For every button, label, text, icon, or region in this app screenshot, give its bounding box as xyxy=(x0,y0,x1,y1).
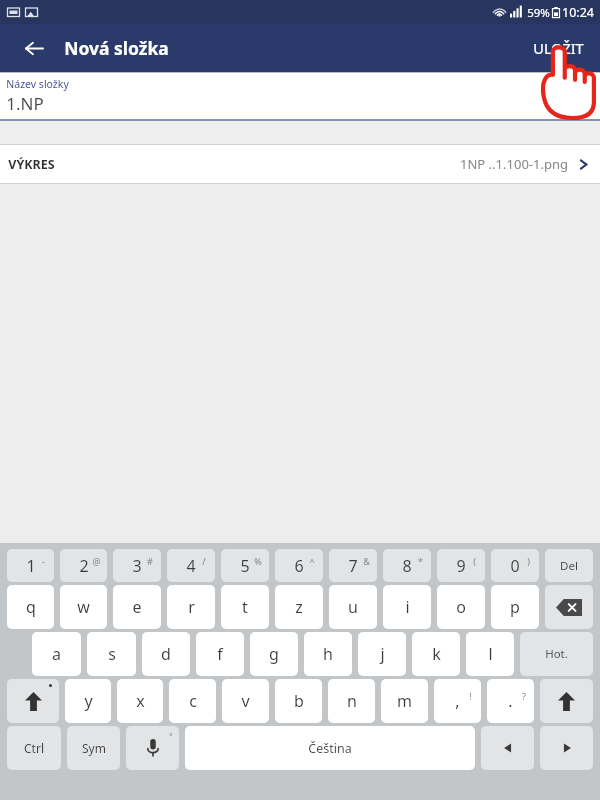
button[interactable]: k xyxy=(412,632,460,676)
staticText: o xyxy=(456,596,466,618)
staticText: 1NP ..1.100-1.png xyxy=(460,155,568,173)
staticText: p xyxy=(510,596,520,618)
button[interactable]: 0 xyxy=(491,549,539,582)
staticText: q xyxy=(26,596,36,618)
button[interactable]: 8 xyxy=(383,549,431,582)
button[interactable]: o xyxy=(437,585,485,629)
button[interactable]: v xyxy=(222,679,269,723)
button[interactable]: Ctrl xyxy=(7,726,61,770)
button[interactable]: e xyxy=(113,585,161,629)
button[interactable]: c xyxy=(169,679,216,723)
staticText: 6 xyxy=(294,555,304,577)
staticText: 5 xyxy=(240,555,250,577)
staticText: t xyxy=(242,596,248,618)
staticText: 10:24 xyxy=(562,4,594,21)
button[interactable]: Move right xyxy=(540,726,593,770)
staticText: k xyxy=(432,643,441,665)
staticText: f xyxy=(217,643,223,665)
button[interactable]: p xyxy=(491,585,539,629)
staticText: ? xyxy=(522,690,526,702)
staticText: x xyxy=(136,690,145,712)
button[interactable]: u xyxy=(329,585,377,629)
button[interactable]: n xyxy=(328,679,375,723)
button[interactable]: , xyxy=(434,679,481,723)
button[interactable]: Čeština xyxy=(185,726,475,770)
button[interactable]: Voice input xyxy=(126,726,179,770)
staticText: - xyxy=(42,555,45,567)
button[interactable]: b xyxy=(275,679,322,723)
staticText: 59% xyxy=(527,5,550,21)
staticText: g xyxy=(269,643,279,665)
button[interactable]: ULOŽIT xyxy=(517,24,600,72)
button[interactable]: f xyxy=(196,632,244,676)
button[interactable]: l xyxy=(466,632,514,676)
button[interactable]: Shift xyxy=(540,679,593,723)
staticText: @ xyxy=(92,555,101,567)
button[interactable]: VÝKRES xyxy=(0,145,600,183)
button[interactable]: 4 xyxy=(167,549,215,582)
staticText: y xyxy=(84,690,93,712)
button[interactable]: 7 xyxy=(329,549,377,582)
staticText: u xyxy=(348,596,358,618)
button[interactable]: x xyxy=(117,679,163,723)
button[interactable]: m xyxy=(381,679,428,723)
button[interactable]: Del xyxy=(545,549,593,582)
staticText: w xyxy=(77,596,90,618)
button[interactable]: h xyxy=(304,632,352,676)
staticText: , xyxy=(455,690,460,712)
button[interactable]: z xyxy=(275,585,323,629)
staticText: Ctrl xyxy=(24,740,44,756)
staticText: Hot. xyxy=(545,646,568,662)
staticText: c xyxy=(189,690,197,712)
staticText: Název složky xyxy=(6,77,69,91)
staticText: i xyxy=(405,596,410,618)
staticText: 8 xyxy=(402,555,412,577)
button[interactable]: 5 xyxy=(221,549,269,582)
staticText: 0 xyxy=(510,555,520,577)
staticText: ULOŽIT xyxy=(533,38,584,58)
staticText: VÝKRES xyxy=(8,156,55,173)
staticText: % xyxy=(254,555,262,567)
staticText: h xyxy=(323,643,333,665)
staticText: ° xyxy=(169,731,173,742)
button[interactable]: 9 xyxy=(437,549,485,582)
button[interactable]: Move left xyxy=(481,726,534,770)
staticText: / xyxy=(202,555,206,567)
button[interactable]: y xyxy=(65,679,111,723)
button[interactable]: i xyxy=(383,585,431,629)
staticText: 7 xyxy=(348,555,358,577)
button[interactable]: 6 xyxy=(275,549,323,582)
button[interactable]: Backspace xyxy=(545,585,593,629)
staticText: 1.NP xyxy=(6,92,44,115)
button[interactable]: r xyxy=(167,585,215,629)
button[interactable]: g xyxy=(250,632,298,676)
button[interactable]: 2 xyxy=(60,549,107,582)
staticText: 2 xyxy=(79,555,89,577)
button[interactable]: Back xyxy=(14,28,54,68)
button[interactable]: Shift xyxy=(7,679,59,723)
button[interactable]: j xyxy=(358,632,406,676)
staticText: m xyxy=(397,690,412,712)
staticText: . xyxy=(508,690,513,712)
staticText: ! xyxy=(469,690,472,702)
button[interactable]: t xyxy=(221,585,269,629)
button[interactable]: Sym xyxy=(67,726,120,770)
staticText: n xyxy=(347,690,357,712)
staticText: b xyxy=(294,690,304,712)
button[interactable]: w xyxy=(60,585,107,629)
button[interactable]: . xyxy=(487,679,534,723)
button[interactable]: s xyxy=(87,632,136,676)
staticText: 9 xyxy=(456,555,466,577)
staticText: j xyxy=(380,643,385,665)
button[interactable]: d xyxy=(142,632,190,676)
staticText: 4 xyxy=(186,555,196,577)
staticText: l xyxy=(488,643,493,665)
staticText: d xyxy=(161,643,171,665)
button[interactable]: q xyxy=(7,585,54,629)
button[interactable]: a xyxy=(32,632,81,676)
button[interactable]: 1 xyxy=(7,549,54,582)
staticText: Čeština xyxy=(308,740,352,757)
staticText: Sym xyxy=(82,740,106,756)
button[interactable]: Hot. xyxy=(520,632,593,676)
button[interactable]: 3 xyxy=(113,549,161,582)
